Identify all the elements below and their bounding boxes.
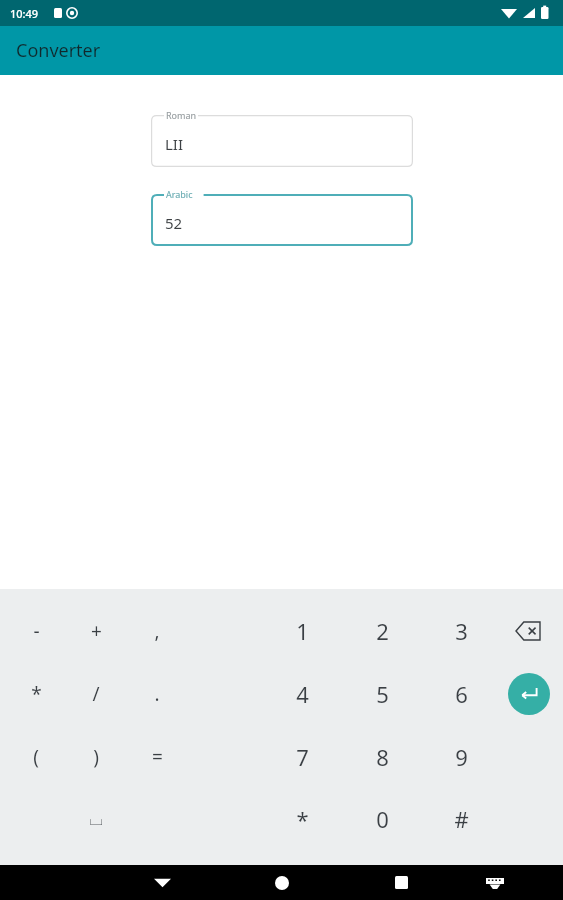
staticText: 5: [376, 679, 389, 709]
staticText: ): [93, 744, 99, 770]
button[interactable]: 2: [352, 605, 412, 657]
staticText: Converter: [16, 38, 101, 63]
staticText: 4: [296, 679, 309, 709]
staticText: (: [33, 744, 39, 770]
staticText: Arabic: [166, 188, 193, 200]
button[interactable]: Backspace: [503, 609, 555, 653]
staticText: 3: [455, 616, 468, 646]
staticText: #: [454, 804, 469, 834]
staticText: 1: [296, 616, 309, 646]
button[interactable]: Arabic: [151, 194, 413, 246]
button[interactable]: 0: [352, 793, 412, 845]
button[interactable]: (: [6, 731, 66, 783]
staticText: Roman: [166, 109, 197, 121]
staticText: *: [31, 681, 42, 707]
button[interactable]: *: [272, 793, 332, 845]
staticText: =: [152, 744, 163, 770]
button[interactable]: =: [127, 731, 187, 783]
button[interactable]: Roman: [151, 115, 413, 167]
button[interactable]: Home: [260, 865, 304, 900]
staticText: 8: [376, 742, 389, 772]
button[interactable]: .: [127, 668, 187, 720]
button[interactable]: 4: [272, 668, 332, 720]
button[interactable]: 5: [352, 668, 412, 720]
button[interactable]: 1: [272, 605, 332, 657]
staticText: .: [154, 681, 160, 707]
button[interactable]: ,: [127, 605, 187, 657]
button[interactable]: Switch keyboard: [475, 865, 515, 900]
staticText: *: [296, 804, 309, 834]
button[interactable]: Back: [140, 865, 184, 900]
button[interactable]: Recent apps: [379, 865, 423, 900]
staticText: ⌴: [89, 811, 103, 828]
staticText: 2: [376, 616, 389, 646]
staticText: 7: [296, 742, 309, 772]
staticText: 6: [455, 679, 468, 709]
staticText: LII: [165, 134, 184, 154]
button[interactable]: ⌴: [66, 793, 126, 845]
staticText: /: [92, 681, 100, 707]
button[interactable]: 8: [352, 731, 412, 783]
staticText: ,: [154, 618, 160, 644]
staticText: 0: [376, 804, 389, 834]
staticText: 9: [455, 742, 468, 772]
button[interactable]: Enter: [508, 673, 550, 715]
staticText: 52: [165, 213, 183, 233]
button[interactable]: 6: [431, 668, 491, 720]
staticText: 10:49: [10, 6, 39, 21]
button[interactable]: +: [66, 605, 126, 657]
staticText: -: [33, 618, 40, 644]
button[interactable]: /: [66, 668, 126, 720]
button[interactable]: #: [431, 793, 491, 845]
button[interactable]: 9: [431, 731, 491, 783]
button[interactable]: -: [6, 605, 66, 657]
button[interactable]: *: [6, 668, 66, 720]
button[interactable]: 3: [431, 605, 491, 657]
button[interactable]: 7: [272, 731, 332, 783]
staticText: +: [91, 618, 102, 644]
button[interactable]: ): [66, 731, 126, 783]
